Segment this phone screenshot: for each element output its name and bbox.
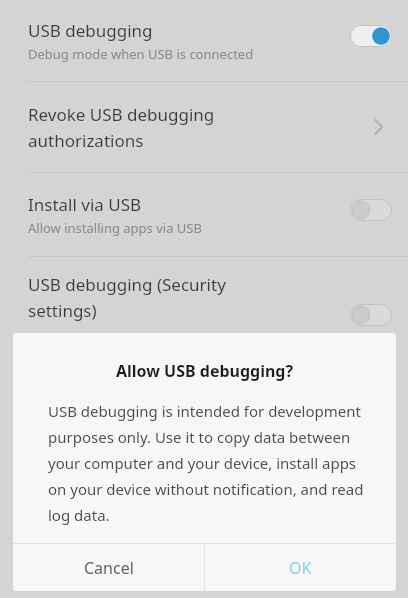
button[interactable]: USB debugging [0, 0, 408, 81]
button[interactable]: USB debugging (Security settings) [0, 257, 408, 347]
staticText: USB debugging [28, 19, 153, 42]
staticText: OK [289, 557, 312, 579]
staticText: Allow USB debugging? [13, 360, 396, 382]
button[interactable]: Install via USB [0, 173, 408, 256]
button[interactable]: Install via USB, off [350, 199, 392, 221]
other: Open revoke authorizations [368, 115, 392, 139]
staticText: Cancel [84, 557, 134, 579]
button[interactable]: USB debugging security settings, off [350, 304, 392, 326]
staticText: Install via USB [28, 193, 142, 216]
button[interactable]: Revoke USB debugging authorizations [0, 82, 408, 172]
button[interactable]: Cancel [13, 544, 204, 591]
staticText: Allow installing apps via USB [28, 219, 202, 237]
staticText: Revoke USB debugging authorizations [28, 103, 215, 152]
staticText: Debug mode when USB is connected [28, 45, 254, 63]
button[interactable]: OK [205, 544, 396, 591]
button[interactable]: USB debugging, on [350, 25, 392, 47]
staticText: USB debugging (Security settings) [28, 273, 226, 322]
staticText: USB debugging is intended for developmen… [48, 401, 370, 526]
